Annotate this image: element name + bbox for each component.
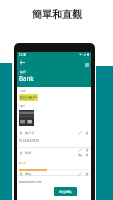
button[interactable]: 帳戶名 bbox=[17, 131, 91, 148]
staticText: 12:30 bbox=[19, 53, 27, 57]
staticText: 簡單和直觀 bbox=[32, 8, 82, 21]
staticText: 銀行帳戶 bbox=[20, 95, 37, 100]
staticText: 名稱 bbox=[20, 89, 26, 93]
button[interactable]: 前往網站 bbox=[54, 187, 77, 196]
staticText: 帳戶 bbox=[20, 70, 26, 74]
staticText: www.bank.com bbox=[19, 180, 42, 184]
staticText: 前往網站 bbox=[59, 190, 72, 194]
staticText: 圖片 bbox=[20, 104, 26, 108]
button[interactable]: Back bbox=[18, 58, 26, 66]
button[interactable]: 餘額 bbox=[17, 148, 91, 176]
staticText: 餘額 bbox=[25, 151, 32, 155]
staticText: Bank bbox=[19, 74, 34, 82]
staticText: 帳戶名 bbox=[25, 131, 35, 135]
staticText: 01234567890 bbox=[19, 139, 40, 143]
button[interactable]: Edit bbox=[83, 61, 90, 68]
staticText: 網站 bbox=[25, 172, 32, 176]
staticText: 載入中 bbox=[19, 162, 27, 165]
button[interactable]: 網站 bbox=[17, 172, 91, 184]
